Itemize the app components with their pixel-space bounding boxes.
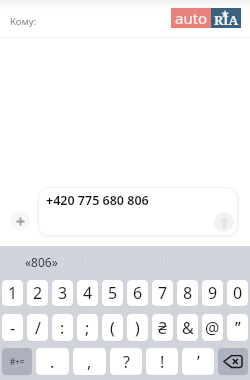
button[interactable]: / [27, 314, 48, 341]
staticText: , [87, 351, 92, 373]
button[interactable]: 7 [152, 280, 173, 306]
staticText: 4 [83, 282, 93, 304]
button[interactable]: & [177, 314, 198, 341]
button[interactable]: ! [146, 348, 178, 375]
staticText: . [50, 351, 55, 373]
button[interactable]: 1 [2, 280, 23, 306]
staticText: 9 [208, 282, 218, 304]
staticText: #+= [10, 356, 25, 367]
staticText: 8 [183, 282, 193, 304]
staticText: ; [85, 317, 90, 339]
staticText: RIA [214, 11, 239, 29]
button[interactable]: - [2, 314, 23, 341]
staticText: : [60, 317, 65, 339]
staticText: +420 775 680 806 [46, 192, 149, 209]
staticText: ’ [197, 351, 200, 373]
staticText: ” [235, 317, 241, 339]
staticText: 7 [158, 282, 168, 304]
button[interactable]: ’ [182, 348, 214, 375]
button[interactable]: 9 [202, 280, 223, 306]
button[interactable]: 5 [102, 280, 123, 306]
staticText: ? [123, 351, 130, 373]
button[interactable]: , [73, 348, 106, 375]
staticText: 3 [58, 282, 68, 304]
button[interactable]: 3 [52, 280, 73, 306]
button[interactable]: +420 775 680 806 [38, 187, 238, 236]
button[interactable]: ( [102, 314, 123, 341]
staticText: / [35, 317, 41, 339]
button[interactable]: #+= [2, 348, 32, 375]
staticText: @ [205, 317, 220, 339]
staticText: 2 [33, 282, 43, 304]
button[interactable]: Backspace [218, 348, 248, 375]
button[interactable]: ? [110, 348, 142, 375]
button[interactable]: @ [202, 314, 223, 341]
staticText: Кому: [10, 15, 37, 28]
button[interactable]: «806» [0, 246, 82, 280]
button[interactable]: ” [227, 314, 248, 341]
button[interactable]: ; [77, 314, 98, 341]
staticText: 5 [108, 282, 118, 304]
button[interactable]: AUTO.RIA logo [171, 8, 241, 28]
button[interactable]: Add attachment [10, 211, 30, 231]
button[interactable]: 8 [177, 280, 198, 306]
staticText: ( [110, 317, 115, 339]
staticText: 0 [233, 282, 243, 304]
button[interactable]: 6 [127, 280, 148, 306]
button[interactable]: . [36, 348, 69, 375]
button[interactable]: 2 [27, 280, 48, 306]
staticText: auto [175, 8, 208, 28]
button[interactable]: ) [127, 314, 148, 341]
staticText: ) [135, 317, 140, 339]
button[interactable]: 4 [77, 280, 98, 306]
staticText: «806» [25, 254, 58, 270]
staticText: 1 [8, 282, 18, 304]
button[interactable]: 0 [227, 280, 248, 306]
button[interactable]: : [52, 314, 73, 341]
staticText: ! [160, 351, 165, 373]
staticText: 6 [133, 282, 143, 304]
staticText: & [182, 317, 194, 339]
button[interactable]: ₴ [152, 314, 173, 341]
staticText: ₴ [158, 317, 167, 339]
button[interactable]: Send [214, 212, 234, 232]
staticText: - [10, 317, 16, 339]
